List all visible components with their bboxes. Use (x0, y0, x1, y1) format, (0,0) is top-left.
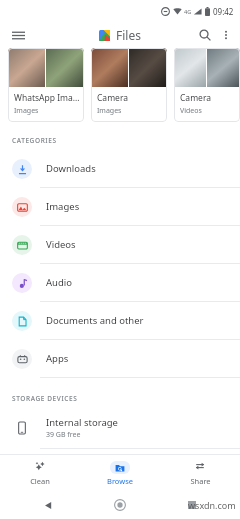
staticText: Browse (107, 476, 133, 486)
button[interactable]: Search (194, 24, 216, 46)
button[interactable]: Clean (0, 455, 80, 491)
button[interactable]: Audio (0, 264, 240, 301)
staticText: Images (46, 200, 80, 213)
staticText: Audio (46, 276, 72, 289)
button[interactable]: Images (0, 188, 240, 225)
staticText: 39 GB free (46, 430, 81, 440)
staticText: 4G (184, 8, 192, 15)
staticText: Camera (180, 92, 211, 104)
button[interactable]: Downloads (0, 150, 240, 187)
button[interactable]: Browse (80, 455, 160, 491)
staticText: Files (116, 27, 141, 43)
button[interactable]: Camera (91, 48, 167, 122)
staticText: wsxdn.com (188, 499, 236, 511)
staticText: Images (14, 106, 39, 116)
staticText: Videos (46, 238, 76, 251)
staticText: CATEGORIES (12, 136, 57, 145)
button[interactable]: Apps (0, 340, 240, 377)
button[interactable]: Recent apps (182, 495, 202, 515)
staticText: WhatsApp Imag… (14, 92, 84, 104)
staticText: 09:42 (213, 6, 234, 17)
button[interactable]: Home (110, 495, 130, 515)
button[interactable]: Back (38, 495, 58, 515)
button[interactable]: Share (160, 455, 240, 491)
staticText: Downloads (46, 162, 96, 175)
staticText: Videos (180, 106, 202, 116)
button[interactable]: Documents and other (0, 302, 240, 339)
staticText: Images (97, 106, 122, 116)
button[interactable]: Camera (174, 48, 240, 122)
staticText: STORAGE DEVICES (12, 394, 78, 403)
button[interactable]: Videos (0, 226, 240, 263)
button[interactable]: Open navigation menu (8, 25, 28, 45)
button[interactable]: More options (216, 25, 236, 45)
staticText: Documents and other (46, 314, 144, 327)
staticText: Apps (46, 352, 69, 365)
staticText: Clean (30, 476, 50, 486)
staticText: Camera (97, 92, 128, 104)
button[interactable]: WhatsApp Imag… (8, 48, 84, 122)
button[interactable]: Internal storage (0, 408, 240, 448)
staticText: Internal storage (46, 416, 118, 429)
staticText: Share (190, 476, 211, 486)
